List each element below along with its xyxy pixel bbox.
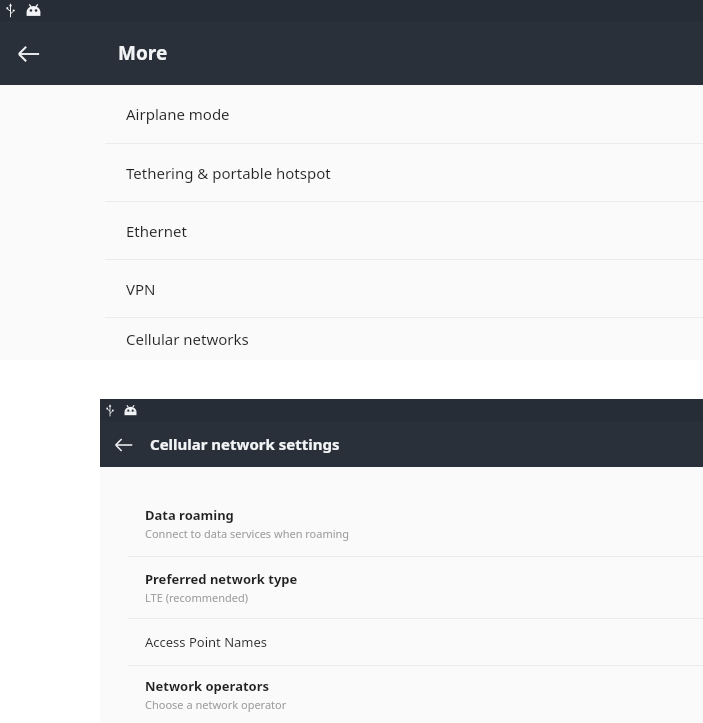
button[interactable]: Airplane mode (0, 85, 703, 143)
button[interactable]: Tethering & portable hotspot (0, 144, 703, 201)
button[interactable]: Preferred network type (100, 557, 703, 618)
staticText: Cellular network settings (150, 434, 340, 454)
button[interactable]: Data roaming (100, 491, 703, 556)
staticText: Tethering & portable hotspot (126, 163, 331, 183)
staticText: LTE (recommended) (145, 590, 249, 605)
staticText: Ethernet (126, 221, 187, 241)
button[interactable]: Navigate up (110, 431, 137, 458)
staticText: Cellular networks (126, 329, 249, 349)
button[interactable]: Cellular networks (0, 318, 703, 360)
button[interactable]: Network operators (100, 666, 703, 723)
staticText: Network operators (145, 677, 270, 695)
staticText: Choose a network operator (145, 697, 287, 712)
staticText: Airplane mode (126, 104, 230, 124)
button[interactable]: Ethernet (0, 202, 703, 259)
staticText: Access Point Names (145, 633, 268, 651)
staticText: VPN (126, 279, 156, 299)
button[interactable]: Navigate up (12, 37, 45, 70)
staticText: Preferred network type (145, 570, 298, 588)
staticText: Data roaming (145, 506, 234, 524)
staticText: More (118, 40, 168, 66)
button[interactable]: Access Point Names (100, 619, 703, 665)
button[interactable]: VPN (0, 260, 703, 317)
staticText: Connect to data services when roaming (145, 526, 350, 541)
